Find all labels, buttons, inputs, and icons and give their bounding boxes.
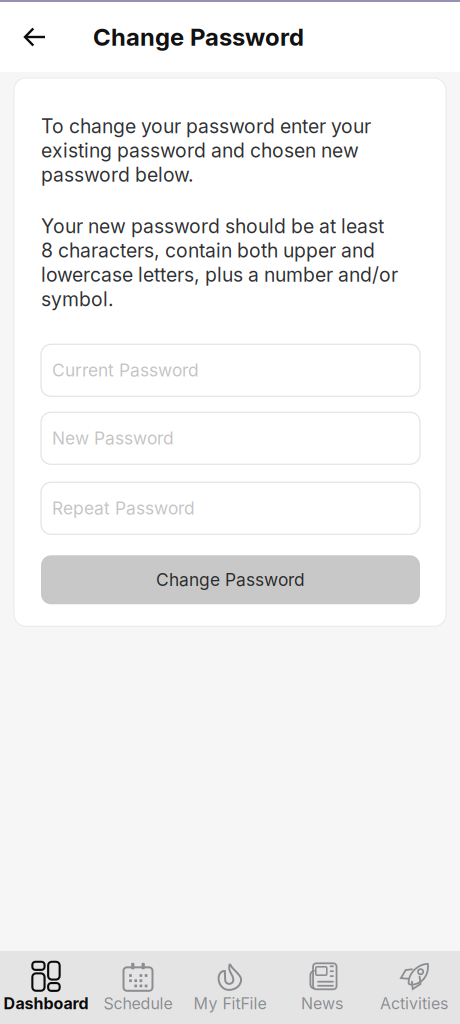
button[interactable]: Dashboard	[0, 962, 92, 1022]
button[interactable]: News	[276, 962, 368, 1022]
staticText: Change Password	[93, 22, 304, 51]
staticText: News	[301, 994, 343, 1013]
staticText: Activities	[380, 994, 448, 1013]
staticText: Schedule	[103, 994, 172, 1013]
staticText: Dashboard	[3, 994, 88, 1013]
staticText: My FitFile	[193, 994, 266, 1013]
button[interactable]: My FitFile	[184, 962, 276, 1022]
staticText: To change your password enter your exist…	[41, 114, 371, 187]
button[interactable]: Activities	[368, 962, 460, 1022]
button[interactable]: Change Password	[41, 555, 420, 604]
button[interactable]: Back	[0, 2, 68, 72]
button[interactable]: Schedule	[92, 962, 184, 1022]
staticText: Repeat Password	[52, 498, 195, 519]
staticText: New Password	[52, 428, 174, 449]
staticText: Your new password should be at least 8 c…	[41, 214, 398, 311]
staticText: Change Password	[156, 569, 305, 590]
staticText: Current Password	[52, 360, 199, 381]
